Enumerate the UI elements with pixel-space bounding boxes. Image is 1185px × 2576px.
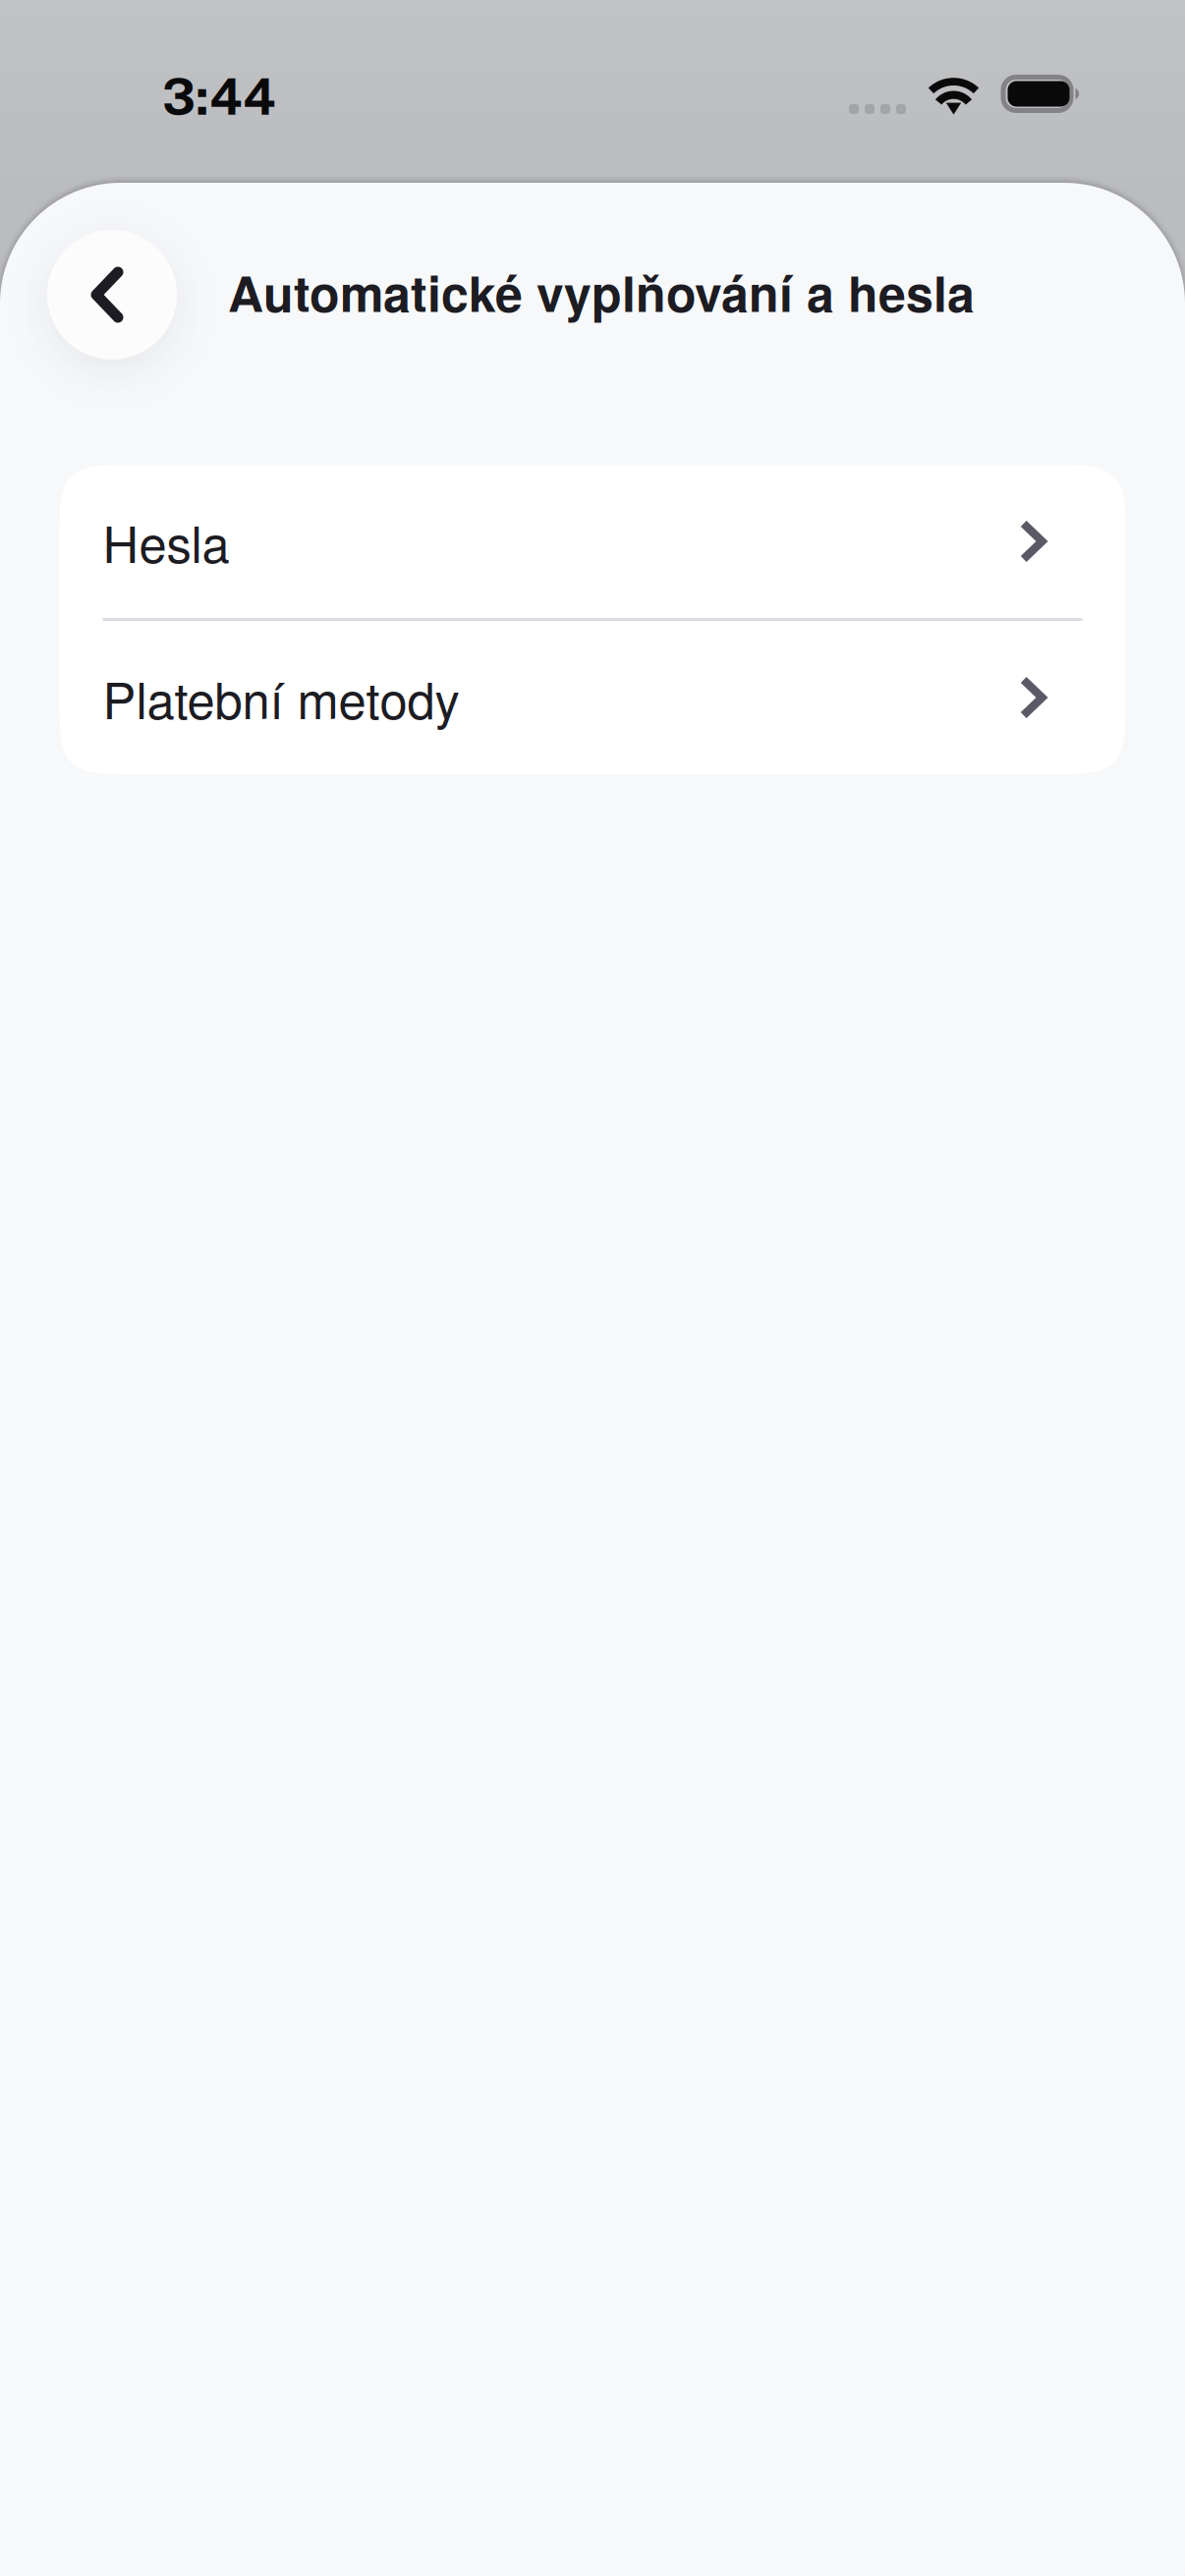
staticText: Hesla [103, 506, 229, 577]
staticText: Platební metody [103, 662, 459, 733]
button[interactable]: Platební metody [59, 621, 1126, 774]
staticText: 3:44 [162, 67, 276, 126]
button[interactable]: Hesla [59, 465, 1126, 618]
staticText: Automatické vyplňování a hesla [228, 257, 975, 327]
button[interactable]: Back [47, 230, 177, 360]
